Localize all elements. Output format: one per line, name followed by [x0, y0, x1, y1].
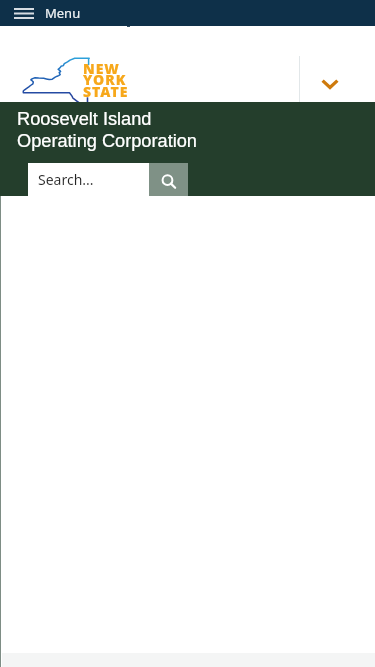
- button[interactable]: Expand menu: [308, 65, 352, 102]
- staticText: Operating Corporation: [17, 131, 197, 151]
- button[interactable]: Search...: [28, 163, 149, 196]
- staticText: NEW: [83, 59, 120, 78]
- button[interactable]: Search: [149, 163, 188, 196]
- staticText: YORK: [83, 70, 127, 89]
- button[interactable]: Menu: [0, 0, 375, 26]
- staticText: STATE: [83, 82, 129, 101]
- staticText: Menu: [45, 4, 81, 22]
- staticText: Roosevelt Island: [17, 109, 152, 129]
- staticText: Search...: [38, 170, 94, 189]
